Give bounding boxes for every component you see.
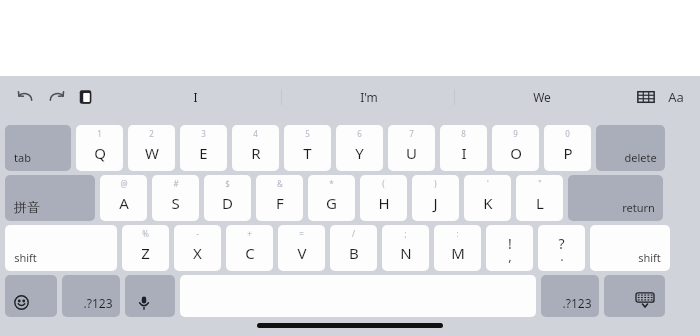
staticText: 9: [513, 128, 518, 139]
staticText: ?: [558, 234, 565, 253]
button[interactable]: .?123: [541, 275, 599, 317]
button[interactable]: 0: [544, 125, 591, 171]
button[interactable]: 5: [284, 125, 331, 171]
staticText: #: [173, 178, 179, 189]
button[interactable]: Paste: [73, 84, 99, 110]
button[interactable]: -: [174, 225, 221, 271]
staticText: .?123: [562, 295, 592, 311]
staticText: S: [171, 193, 180, 213]
staticText: @: [120, 178, 128, 189]
button[interactable]: /: [330, 225, 377, 271]
button[interactable]: Undo: [13, 84, 39, 110]
button[interactable]: ?: [538, 225, 585, 271]
staticText: 1: [97, 128, 102, 139]
staticText: A: [119, 193, 129, 213]
staticText: tab: [14, 150, 31, 165]
staticText: &: [277, 178, 283, 189]
button[interactable]: Table: [634, 85, 658, 109]
staticText: R: [251, 143, 261, 163]
button[interactable]: 8: [440, 125, 487, 171]
staticText: Z: [141, 243, 150, 263]
button[interactable]: Dismiss keyboard: [604, 275, 665, 317]
button[interactable]: shift: [5, 225, 117, 271]
staticText: V: [297, 243, 307, 263]
button[interactable]: :: [434, 225, 481, 271]
button[interactable]: !: [486, 225, 533, 271]
button[interactable]: .?123: [62, 275, 120, 317]
staticText: D: [222, 193, 233, 213]
button[interactable]: 3: [180, 125, 227, 171]
staticText: 拼音: [14, 199, 40, 215]
staticText: /: [352, 228, 355, 239]
button[interactable]: Voice input: [125, 275, 175, 317]
button[interactable]: return: [568, 175, 663, 221]
button[interactable]: We: [455, 82, 628, 112]
button[interactable]: ': [464, 175, 511, 221]
staticText: J: [433, 193, 438, 213]
button[interactable]: 4: [232, 125, 279, 171]
staticText: Aa: [668, 88, 684, 106]
button[interactable]: &: [256, 175, 303, 221]
staticText: 7: [409, 128, 414, 139]
button[interactable]: ): [412, 175, 459, 221]
staticText: shift: [14, 250, 37, 265]
staticText: ': [487, 178, 489, 189]
staticText: .: [560, 247, 564, 265]
button[interactable]: Redo: [43, 84, 69, 110]
button[interactable]: =: [278, 225, 325, 271]
button[interactable]: I: [108, 82, 282, 112]
staticText: N: [400, 243, 412, 263]
staticText: 6: [357, 128, 362, 139]
staticText: .?123: [83, 295, 113, 311]
staticText: ": [538, 178, 542, 189]
staticText: (: [382, 178, 385, 189]
staticText: *: [329, 178, 334, 189]
staticText: Y: [355, 143, 364, 163]
staticText: ): [434, 178, 437, 189]
staticText: B: [349, 243, 359, 263]
button[interactable]: 拼音: [5, 175, 95, 221]
button[interactable]: 7: [388, 125, 435, 171]
button[interactable]: %: [122, 225, 169, 271]
staticText: T: [303, 143, 312, 163]
button[interactable]: +: [226, 225, 273, 271]
button[interactable]: 9: [492, 125, 539, 171]
staticText: M: [451, 243, 465, 263]
button[interactable]: tab: [5, 125, 71, 171]
button[interactable]: ": [516, 175, 563, 221]
staticText: 3: [201, 128, 206, 139]
staticText: %: [142, 228, 149, 239]
staticText: W: [145, 143, 159, 163]
staticText: 2: [149, 128, 154, 139]
button[interactable]: shift: [590, 225, 670, 271]
staticText: $: [225, 178, 230, 189]
staticText: H: [378, 193, 390, 213]
button[interactable]: (: [360, 175, 407, 221]
staticText: return: [622, 200, 655, 215]
staticText: E: [199, 143, 208, 163]
staticText: 4: [253, 128, 258, 139]
button[interactable]: @: [100, 175, 147, 221]
staticText: :: [456, 228, 459, 239]
button[interactable]: *: [308, 175, 355, 221]
button[interactable]: 2: [128, 125, 175, 171]
staticText: L: [536, 193, 544, 213]
staticText: Q: [94, 143, 106, 163]
staticText: +: [247, 228, 252, 239]
staticText: C: [245, 243, 255, 263]
staticText: 8: [461, 128, 466, 139]
button[interactable]: I'm: [282, 82, 455, 112]
button[interactable]: $: [204, 175, 251, 221]
button[interactable]: 1: [76, 125, 123, 171]
button[interactable]: Emoji: [5, 275, 57, 317]
staticText: ,: [508, 247, 512, 265]
button[interactable]: delete: [596, 125, 665, 171]
staticText: O: [510, 143, 522, 163]
staticText: !: [508, 234, 512, 253]
button[interactable]: #: [152, 175, 199, 221]
staticText: 0: [565, 128, 570, 139]
button[interactable]: Text format: [664, 85, 688, 109]
button[interactable]: 6: [336, 125, 383, 171]
button[interactable]: ;: [382, 225, 429, 271]
